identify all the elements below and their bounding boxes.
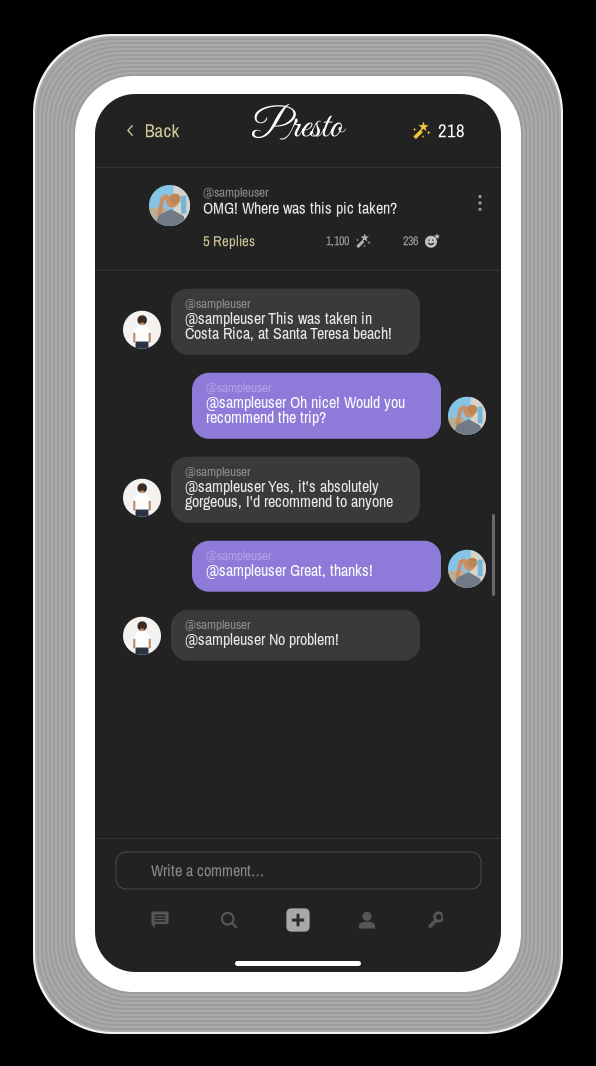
staticText: Costa Rica, at Santa Teresa beach!	[185, 322, 392, 344]
button[interactable]: Search	[210, 905, 248, 935]
button[interactable]: Back	[95, 108, 193, 153]
staticText: @sampleuser	[206, 546, 272, 564]
staticText: Presto	[252, 102, 343, 153]
staticText: @sampleuser	[185, 294, 251, 312]
staticText: 5 Replies	[203, 231, 255, 251]
button[interactable]: 1,100	[326, 233, 371, 249]
button[interactable]: 5 Replies	[203, 229, 255, 253]
staticText: recommend the trip?	[206, 406, 326, 428]
button[interactable]: New post	[279, 905, 317, 935]
staticText: OMG! Where was this pic taken?	[203, 197, 397, 219]
staticText: @sampleuser This was taken in	[185, 307, 372, 329]
button[interactable]: Settings	[417, 905, 455, 935]
staticText: 1,100	[326, 233, 349, 249]
staticText: @sampleuser Oh nice! Would you	[206, 391, 405, 413]
staticText: gorgeous, I'd recommend to anyone	[185, 490, 393, 512]
staticText: @sampleuser Great, thanks!	[206, 559, 373, 581]
staticText: @sampleuser	[185, 615, 251, 633]
staticText: 218	[438, 118, 465, 143]
staticText: @sampleuser	[203, 183, 269, 201]
button[interactable]: 218	[399, 108, 501, 153]
staticText: @sampleuser	[185, 462, 251, 480]
staticText: @sampleuser Yes, it's absolutely	[185, 475, 379, 497]
button[interactable]: More options	[474, 185, 487, 211]
staticText: Write a comment…	[151, 860, 264, 881]
button[interactable]: 236	[403, 233, 440, 249]
button[interactable]: Write a comment…	[116, 852, 481, 889]
staticText: Back	[144, 118, 179, 143]
button[interactable]: Profile	[348, 905, 386, 935]
staticText: @sampleuser No problem!	[185, 628, 339, 650]
staticText: @sampleuser	[206, 378, 272, 396]
button[interactable]: Messages	[141, 905, 179, 935]
staticText: 236	[403, 233, 418, 249]
